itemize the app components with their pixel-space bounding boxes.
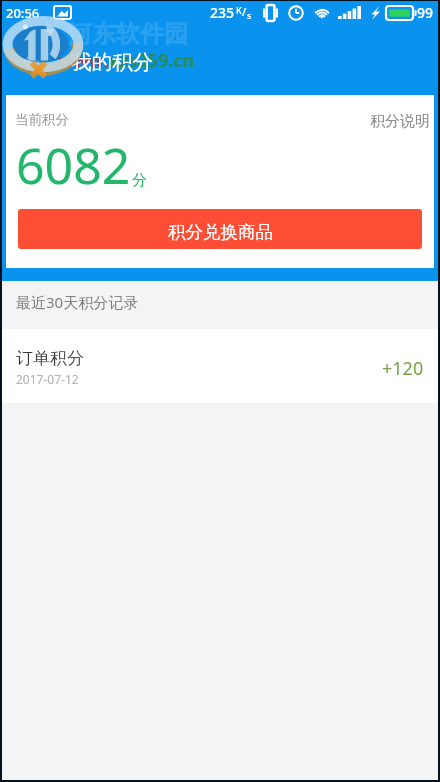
staticText: 积分说明 (370, 112, 430, 131)
staticText: 最近30天积分记录 (16, 292, 139, 312)
staticText: 我的积分 (71, 49, 153, 75)
staticText: www. (58, 48, 109, 73)
staticText: xzs359.cn (109, 48, 195, 73)
button[interactable]: 积分说明 (370, 95, 434, 131)
button[interactable]: 订单积分 (2, 329, 438, 403)
button[interactable]: Back (2, 33, 58, 89)
staticText: 20:56 (6, 4, 40, 22)
staticText: 河东软件园 (68, 19, 188, 49)
staticText: 积分兑换商品 (168, 221, 273, 243)
staticText: 订单积分 (16, 348, 84, 369)
staticText: 当前积分 (15, 111, 69, 128)
staticText: +120 (382, 356, 424, 381)
staticText: 2017-07-12 (16, 371, 79, 387)
staticText: 分 (132, 171, 147, 190)
staticText: K (236, 4, 242, 16)
staticText: / (242, 4, 247, 19)
staticText: 235 (210, 3, 235, 22)
button[interactable]: 积分兑换商品 (18, 209, 422, 249)
staticText: 6082 (16, 131, 131, 199)
staticText: 99 (417, 3, 434, 22)
staticText: s (247, 9, 252, 21)
